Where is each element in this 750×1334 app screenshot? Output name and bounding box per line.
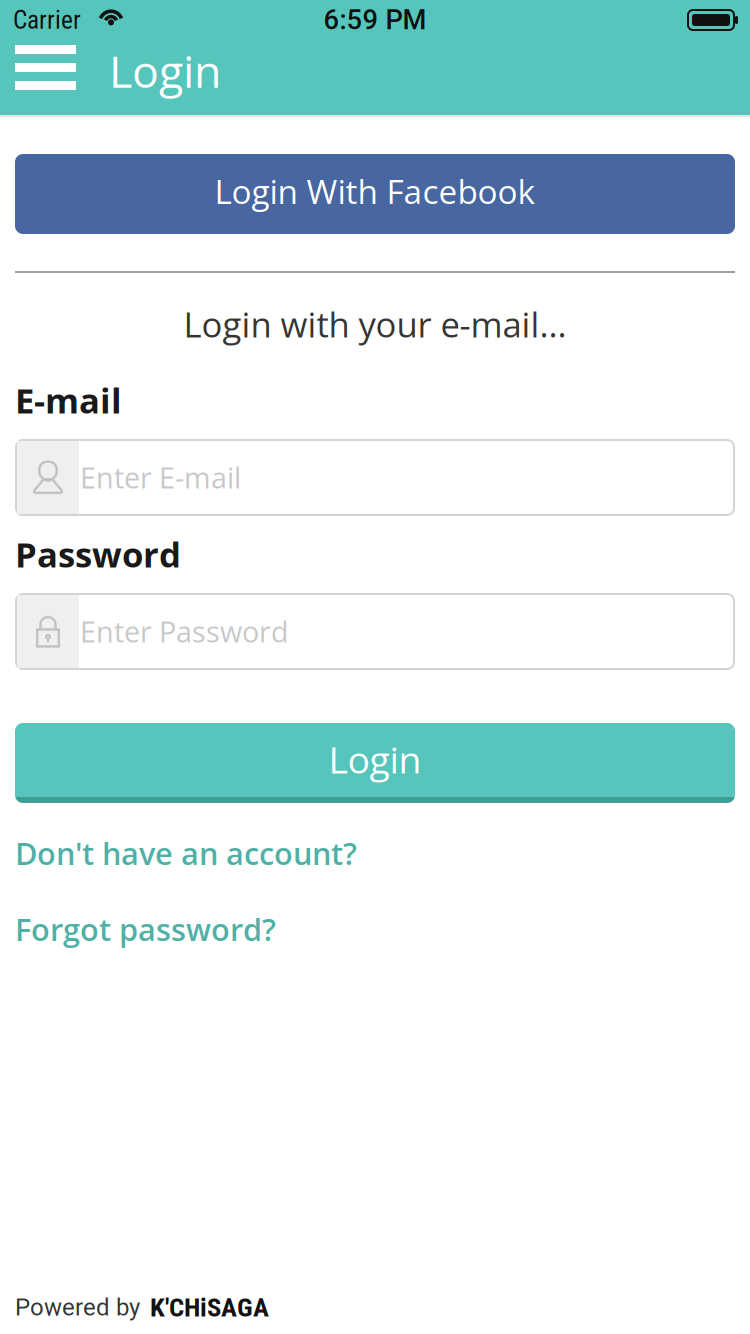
button[interactable]: Don't have an account? bbox=[15, 835, 357, 871]
staticText: Login bbox=[109, 40, 221, 101]
button[interactable]: Login With Facebook bbox=[15, 154, 735, 234]
staticText: 6:59 PM bbox=[323, 4, 426, 36]
button[interactable]: Enter Password bbox=[15, 593, 735, 670]
staticText: Forgot password? bbox=[15, 908, 276, 950]
button[interactable] bbox=[0, 45, 76, 90]
staticText: Enter Password bbox=[80, 612, 289, 651]
button[interactable]: Enter E-mail bbox=[15, 439, 735, 516]
staticText: Login with your e-mail... bbox=[183, 300, 566, 348]
staticText: Don't have an account? bbox=[15, 832, 357, 874]
staticText: Enter E-mail bbox=[80, 458, 241, 497]
staticText: E-mail bbox=[15, 376, 122, 424]
button[interactable]: Forgot password? bbox=[15, 911, 276, 947]
button[interactable]: Login bbox=[15, 723, 735, 803]
staticText: K'CHiSAGA bbox=[150, 1292, 269, 1323]
staticText: Password bbox=[15, 530, 181, 578]
staticText: Login bbox=[328, 734, 421, 784]
staticText: Login With Facebook bbox=[214, 168, 535, 214]
staticText: Carrier bbox=[13, 5, 81, 35]
staticText: Powered by bbox=[15, 1293, 140, 1321]
